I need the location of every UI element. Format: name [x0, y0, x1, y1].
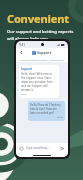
- staticText: 09:41: [21, 93, 27, 96]
- staticText: Convenient: [7, 11, 69, 26]
- staticText: Hello! How do I find my bets & tips? How…: [30, 103, 63, 115]
- button[interactable]: Back: [19, 50, 24, 55]
- button[interactable]: Hello! How do I find my bets & tips? How…: [28, 101, 65, 121]
- staticText: 09:42: [57, 116, 63, 119]
- staticText: Type something...: [26, 146, 50, 150]
- staticText: Support: [37, 50, 52, 55]
- button[interactable]: Attach file: [19, 146, 24, 151]
- button[interactable]: Type something...: [26, 146, 60, 150]
- staticText: 9:41: [19, 43, 25, 47]
- staticText: Customer support team — we are here: [20, 58, 64, 61]
- button[interactable]: Support: [19, 65, 59, 98]
- staticText: Hello, dear! Welcome to the support chat…: [21, 72, 57, 92]
- button[interactable]: Send: [60, 146, 65, 151]
- staticText: Our support and betting experts will alw…: [7, 29, 74, 41]
- staticText: Support: [21, 67, 33, 71]
